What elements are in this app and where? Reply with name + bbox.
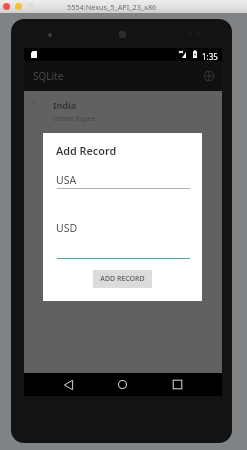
button[interactable]: Add record (198, 65, 220, 87)
staticText: USA (56, 173, 77, 187)
staticText: SQLite (33, 69, 64, 83)
staticText: 1:35 (202, 51, 218, 62)
button[interactable]: Recents (159, 373, 195, 396)
staticText: India (53, 99, 77, 111)
button[interactable]: ADD RECORD (93, 270, 152, 288)
staticText: USD (56, 221, 78, 235)
staticText: Indian Rupee (53, 114, 96, 123)
button[interactable]: Home (104, 373, 140, 396)
staticText: ADD RECORD (100, 274, 145, 284)
button[interactable]: 1 (24, 91, 222, 131)
button[interactable]: Back (50, 373, 86, 396)
staticText: 1 (32, 99, 37, 109)
staticText: Add Record (56, 143, 117, 158)
staticText: 5554:Nexus_5_API_23_x86 (67, 2, 157, 12)
